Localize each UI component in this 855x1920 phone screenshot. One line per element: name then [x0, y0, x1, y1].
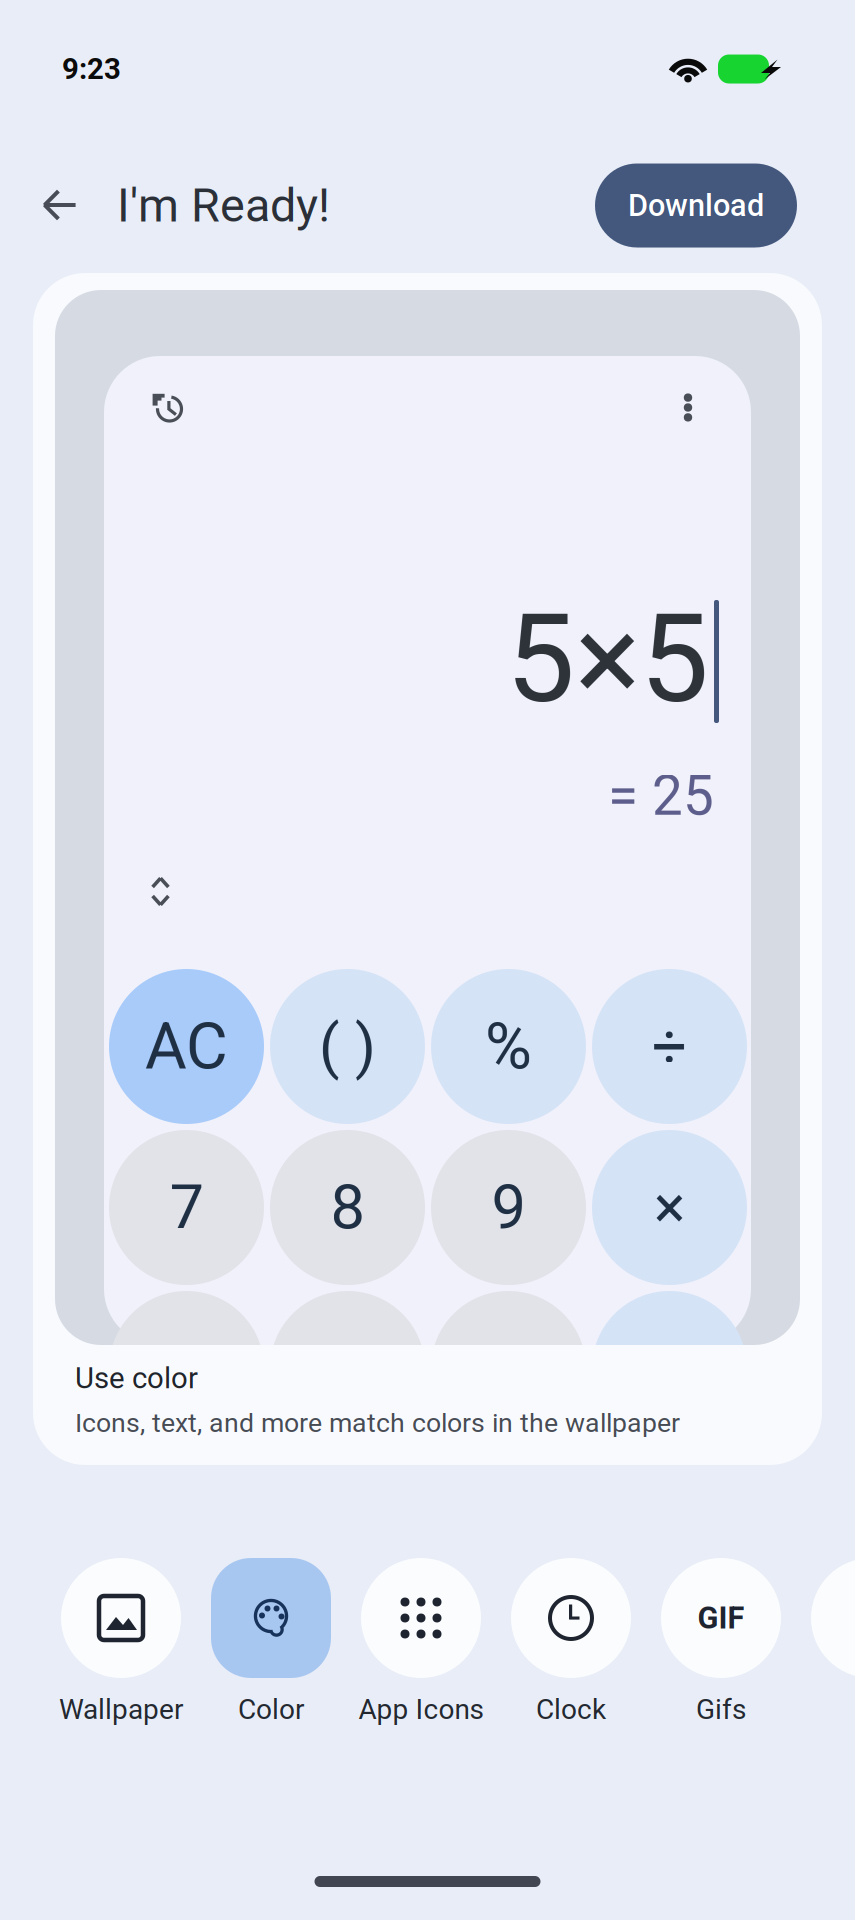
button[interactable]: 7: [109, 1130, 264, 1285]
button[interactable]: 5: [270, 1291, 425, 1446]
button[interactable]: Download: [595, 163, 797, 247]
button[interactable]: ÷: [592, 969, 747, 1124]
staticText: Gifs: [696, 1693, 746, 1726]
button[interactable]: −: [592, 1291, 747, 1446]
button[interactable]: ( ): [270, 969, 425, 1124]
button[interactable]: Wallpaper: [61, 1558, 181, 1726]
staticText: 7: [169, 1172, 203, 1243]
button[interactable]: 9: [431, 1130, 586, 1285]
staticText: %: [485, 1009, 532, 1084]
button[interactable]: More options: [675, 394, 701, 421]
staticText: = 25: [608, 764, 714, 828]
button[interactable]: 4: [109, 1291, 264, 1446]
button[interactable]: 6: [431, 1291, 586, 1446]
staticText: GIF: [697, 1600, 744, 1636]
button[interactable]: [811, 1558, 855, 1726]
staticText: 8: [330, 1172, 364, 1243]
staticText: App Icons: [358, 1693, 483, 1726]
staticText: 9:23: [62, 52, 121, 86]
staticText: Use color: [75, 1361, 198, 1395]
staticText: Icons, text, and more match colors in th…: [75, 1407, 680, 1439]
staticText: Wallpaper: [59, 1693, 183, 1726]
staticText: 5: [330, 1333, 364, 1404]
staticText: Clock: [536, 1693, 606, 1726]
button[interactable]: GIF: [661, 1558, 781, 1726]
staticText: Color: [238, 1693, 304, 1726]
staticText: AC: [145, 1009, 228, 1084]
staticText: I'm Ready!: [117, 178, 330, 233]
button[interactable]: 8: [270, 1130, 425, 1285]
staticText: 9: [491, 1172, 525, 1243]
staticText: ×: [654, 1173, 685, 1242]
button[interactable]: Clock: [511, 1558, 631, 1726]
staticText: −: [652, 1334, 686, 1403]
staticText: Download: [628, 187, 764, 223]
button[interactable]: Back: [31, 176, 89, 234]
staticText: 4: [169, 1333, 203, 1404]
staticText: ( ): [319, 1011, 376, 1082]
button[interactable]: %: [431, 969, 586, 1124]
button[interactable]: App Icons: [361, 1558, 481, 1726]
staticText: 5×5: [506, 587, 709, 731]
button[interactable]: ×: [592, 1130, 747, 1285]
button[interactable]: AC: [109, 969, 264, 1124]
button[interactable]: Color: [211, 1558, 331, 1726]
staticText: ÷: [652, 1011, 687, 1082]
staticText: 6: [491, 1333, 525, 1404]
button[interactable]: History: [152, 392, 183, 423]
